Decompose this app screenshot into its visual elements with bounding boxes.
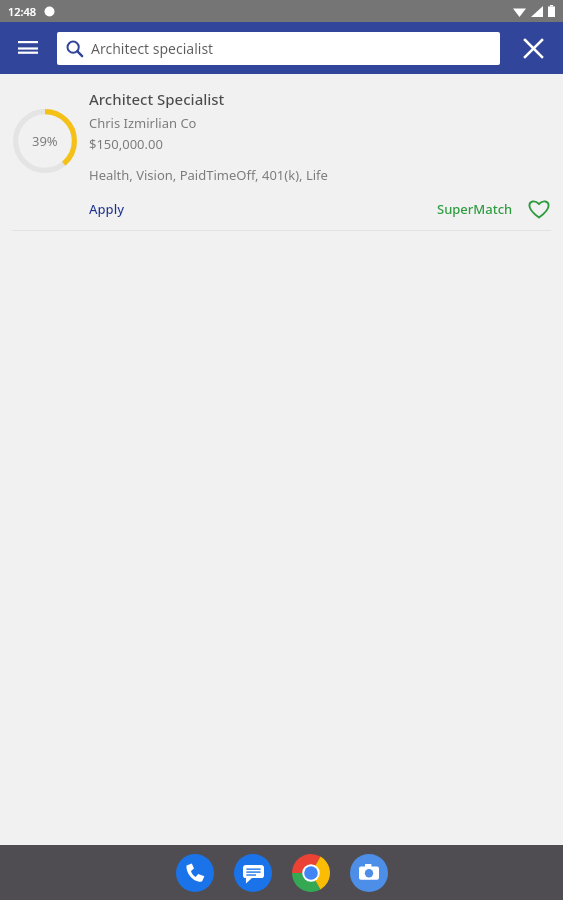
button[interactable]: Phone [176,854,214,892]
button[interactable]: Camera [350,854,388,892]
button[interactable]: Chrome [292,854,330,892]
staticText: $150,000.00 [89,135,163,153]
staticText: Architect specialist [91,39,214,58]
staticText: 39% [32,132,58,150]
button[interactable]: Open navigation menu [8,28,48,68]
button[interactable]: 39% [0,74,563,231]
button[interactable]: Messages [234,854,272,892]
button[interactable]: Close search [513,28,553,68]
staticText: Architect Specialist [89,89,225,109]
button[interactable]: Architect specialist [57,32,500,65]
button[interactable]: Apply [89,200,125,218]
staticText: SuperMatch [437,200,513,218]
staticText: Health, Vision, PaidTimeOff, 401(k), Lif… [89,166,328,184]
staticText: 12:48 [8,4,37,19]
staticText: Apply [89,200,125,218]
button[interactable]: Save job [527,197,551,221]
staticText: Chris Izmirlian Co [89,114,197,132]
